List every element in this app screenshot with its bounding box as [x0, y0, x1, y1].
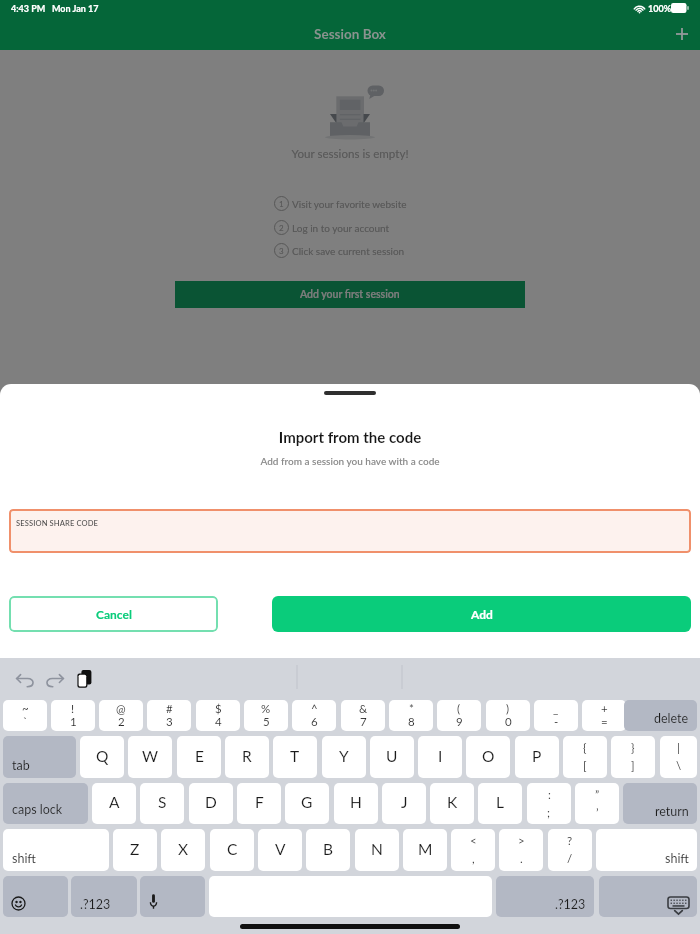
- staticText: G: [301, 793, 313, 812]
- button[interactable]: &: [341, 700, 385, 731]
- button[interactable]: Add your first session: [175, 281, 525, 308]
- button[interactable]: O: [466, 736, 510, 778]
- button[interactable]: E: [177, 736, 221, 778]
- button[interactable]: 1: [274, 196, 410, 211]
- staticText: shift: [12, 851, 36, 866]
- button[interactable]: >: [499, 829, 543, 871]
- button[interactable]: J: [382, 783, 426, 824]
- button[interactable]: Y: [322, 736, 366, 778]
- button[interactable]: SESSION SHARE CODE: [9, 509, 691, 553]
- button[interactable]: 3: [274, 243, 410, 258]
- button[interactable]: ): [486, 700, 530, 731]
- staticText: 3: [166, 715, 173, 729]
- button[interactable]: Dictation: [140, 876, 205, 917]
- button[interactable]: W: [128, 736, 172, 778]
- staticText: delete: [654, 711, 689, 726]
- button[interactable]: .?123: [71, 876, 137, 917]
- button[interactable]: V: [258, 829, 302, 871]
- button[interactable]: K: [430, 783, 474, 824]
- staticText: Your sessions is empty!: [0, 147, 700, 161]
- button[interactable]: ^: [292, 700, 336, 731]
- button[interactable]: M: [403, 829, 447, 871]
- button[interactable]: $: [196, 700, 240, 731]
- staticText: [: [583, 759, 587, 773]
- button[interactable]: L: [478, 783, 522, 824]
- staticText: Click save current session: [292, 245, 405, 257]
- staticText: caps lock: [12, 802, 63, 817]
- button[interactable]: *: [389, 700, 433, 731]
- staticText: 9: [456, 715, 463, 729]
- staticText: P: [532, 747, 542, 766]
- staticText: 2: [118, 715, 125, 729]
- staticText: Mon Jan 17: [52, 3, 99, 14]
- button[interactable]: !: [51, 700, 95, 731]
- button[interactable]: return: [623, 783, 697, 824]
- staticText: V: [275, 840, 286, 859]
- button[interactable]: shift: [596, 829, 697, 871]
- button[interactable]: B: [306, 829, 350, 871]
- button[interactable]: delete: [624, 700, 697, 731]
- button[interactable]: Redo: [37, 661, 73, 697]
- button[interactable]: }: [611, 736, 655, 778]
- staticText: A: [109, 793, 120, 812]
- staticText: %: [261, 702, 271, 716]
- button[interactable]: Q: [80, 736, 124, 778]
- button[interactable]: ”: [575, 783, 619, 824]
- button[interactable]: H: [334, 783, 378, 824]
- button[interactable]: (: [437, 700, 481, 731]
- button[interactable]: {: [563, 736, 607, 778]
- button[interactable]: Hide keyboard: [599, 876, 697, 917]
- staticText: ^: [311, 702, 318, 716]
- button[interactable]: .?123: [496, 876, 594, 917]
- button[interactable]: Add: [272, 596, 691, 632]
- button[interactable]: caps lock: [3, 783, 88, 824]
- button[interactable]: :: [527, 783, 571, 824]
- staticText: 0: [505, 715, 512, 729]
- staticText: O: [482, 747, 495, 766]
- button[interactable]: T: [273, 736, 317, 778]
- button[interactable]: Undo: [7, 661, 43, 697]
- button[interactable]: Paste: [67, 661, 103, 697]
- staticText: ): [506, 702, 510, 716]
- button[interactable]: Cancel: [9, 596, 218, 632]
- staticText: .?123: [80, 897, 111, 912]
- button[interactable]: S: [140, 783, 184, 824]
- staticText: /: [567, 852, 573, 866]
- button[interactable]: <: [451, 829, 495, 871]
- staticText: ?: [567, 834, 573, 848]
- button[interactable]: N: [355, 829, 399, 871]
- button[interactable]: P: [515, 736, 559, 778]
- staticText: Y: [339, 747, 349, 766]
- staticText: 6: [311, 715, 318, 729]
- staticText: 2: [279, 223, 284, 233]
- button[interactable]: tab: [3, 736, 76, 778]
- button[interactable]: D: [189, 783, 233, 824]
- button[interactable]: +: [582, 700, 626, 731]
- button[interactable]: X: [161, 829, 205, 871]
- button[interactable]: shift: [3, 829, 109, 871]
- button[interactable]: @: [99, 700, 143, 731]
- button[interactable]: I: [418, 736, 462, 778]
- staticText: return: [655, 804, 689, 819]
- button[interactable]: Add session: [668, 20, 695, 47]
- button[interactable]: %: [244, 700, 288, 731]
- button[interactable]: ?: [548, 829, 592, 871]
- button[interactable]: #: [147, 700, 191, 731]
- button[interactable]: A: [92, 783, 136, 824]
- button[interactable]: |: [660, 736, 697, 778]
- button[interactable]: C: [210, 829, 254, 871]
- button[interactable]: U: [370, 736, 414, 778]
- button[interactable]: R: [225, 736, 269, 778]
- staticText: U: [386, 747, 398, 766]
- staticText: 1: [70, 715, 77, 729]
- button[interactable]: Emoji: [3, 876, 68, 917]
- button[interactable]: Z: [113, 829, 157, 871]
- button[interactable]: G: [285, 783, 329, 824]
- button[interactable]: _: [534, 700, 578, 731]
- button[interactable]: F: [237, 783, 281, 824]
- button[interactable]: 2: [274, 220, 410, 235]
- staticText: ]: [631, 759, 635, 773]
- button[interactable]: ~: [3, 700, 47, 731]
- staticText: }: [631, 741, 635, 755]
